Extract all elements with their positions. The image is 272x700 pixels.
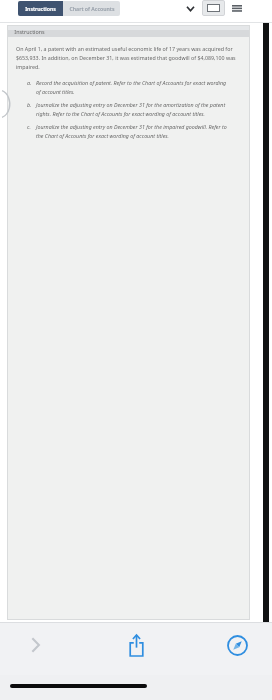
- button[interactable]: Chart of Accounts: [63, 1, 120, 16]
- staticText: Instructions: [25, 5, 56, 12]
- button[interactable]: Show options: [181, 0, 200, 16]
- staticText: Journalize the adjusting entry on Decemb…: [36, 101, 231, 118]
- button[interactable]: Menu: [227, 0, 247, 16]
- staticText: Record the acquisition of patent. Refer …: [36, 79, 231, 96]
- button[interactable]: Instructions: [18, 1, 63, 16]
- button[interactable]: Page view: [202, 0, 225, 16]
- button[interactable]: Share: [108, 623, 164, 667]
- staticText: c.: [27, 123, 31, 130]
- staticText: Instructions: [14, 28, 45, 35]
- button[interactable]: Forward: [0, 623, 70, 667]
- staticText: a.: [27, 79, 32, 86]
- staticText: b.: [27, 101, 32, 108]
- staticText: Journalize the adjusting entry on Decemb…: [36, 123, 231, 140]
- staticText: Chart of Accounts: [69, 5, 115, 12]
- button[interactable]: Safari: [202, 623, 272, 667]
- staticText: On April 1, a patent with an estimated u…: [16, 45, 239, 71]
